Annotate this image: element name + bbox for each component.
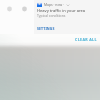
staticText: CLEAR ALL — [75, 37, 97, 42]
button[interactable]: CLEAR ALL — [73, 35, 99, 44]
staticText: Maps · now · — [44, 2, 64, 7]
staticText: Heavy traffic in your area — [37, 8, 86, 13]
staticText: Typical conditions — [37, 13, 66, 18]
button[interactable]: Maps · now · — [34, 0, 100, 34]
staticText: SETTINGS — [37, 26, 55, 31]
other: Expand notification — [66, 3, 70, 7]
